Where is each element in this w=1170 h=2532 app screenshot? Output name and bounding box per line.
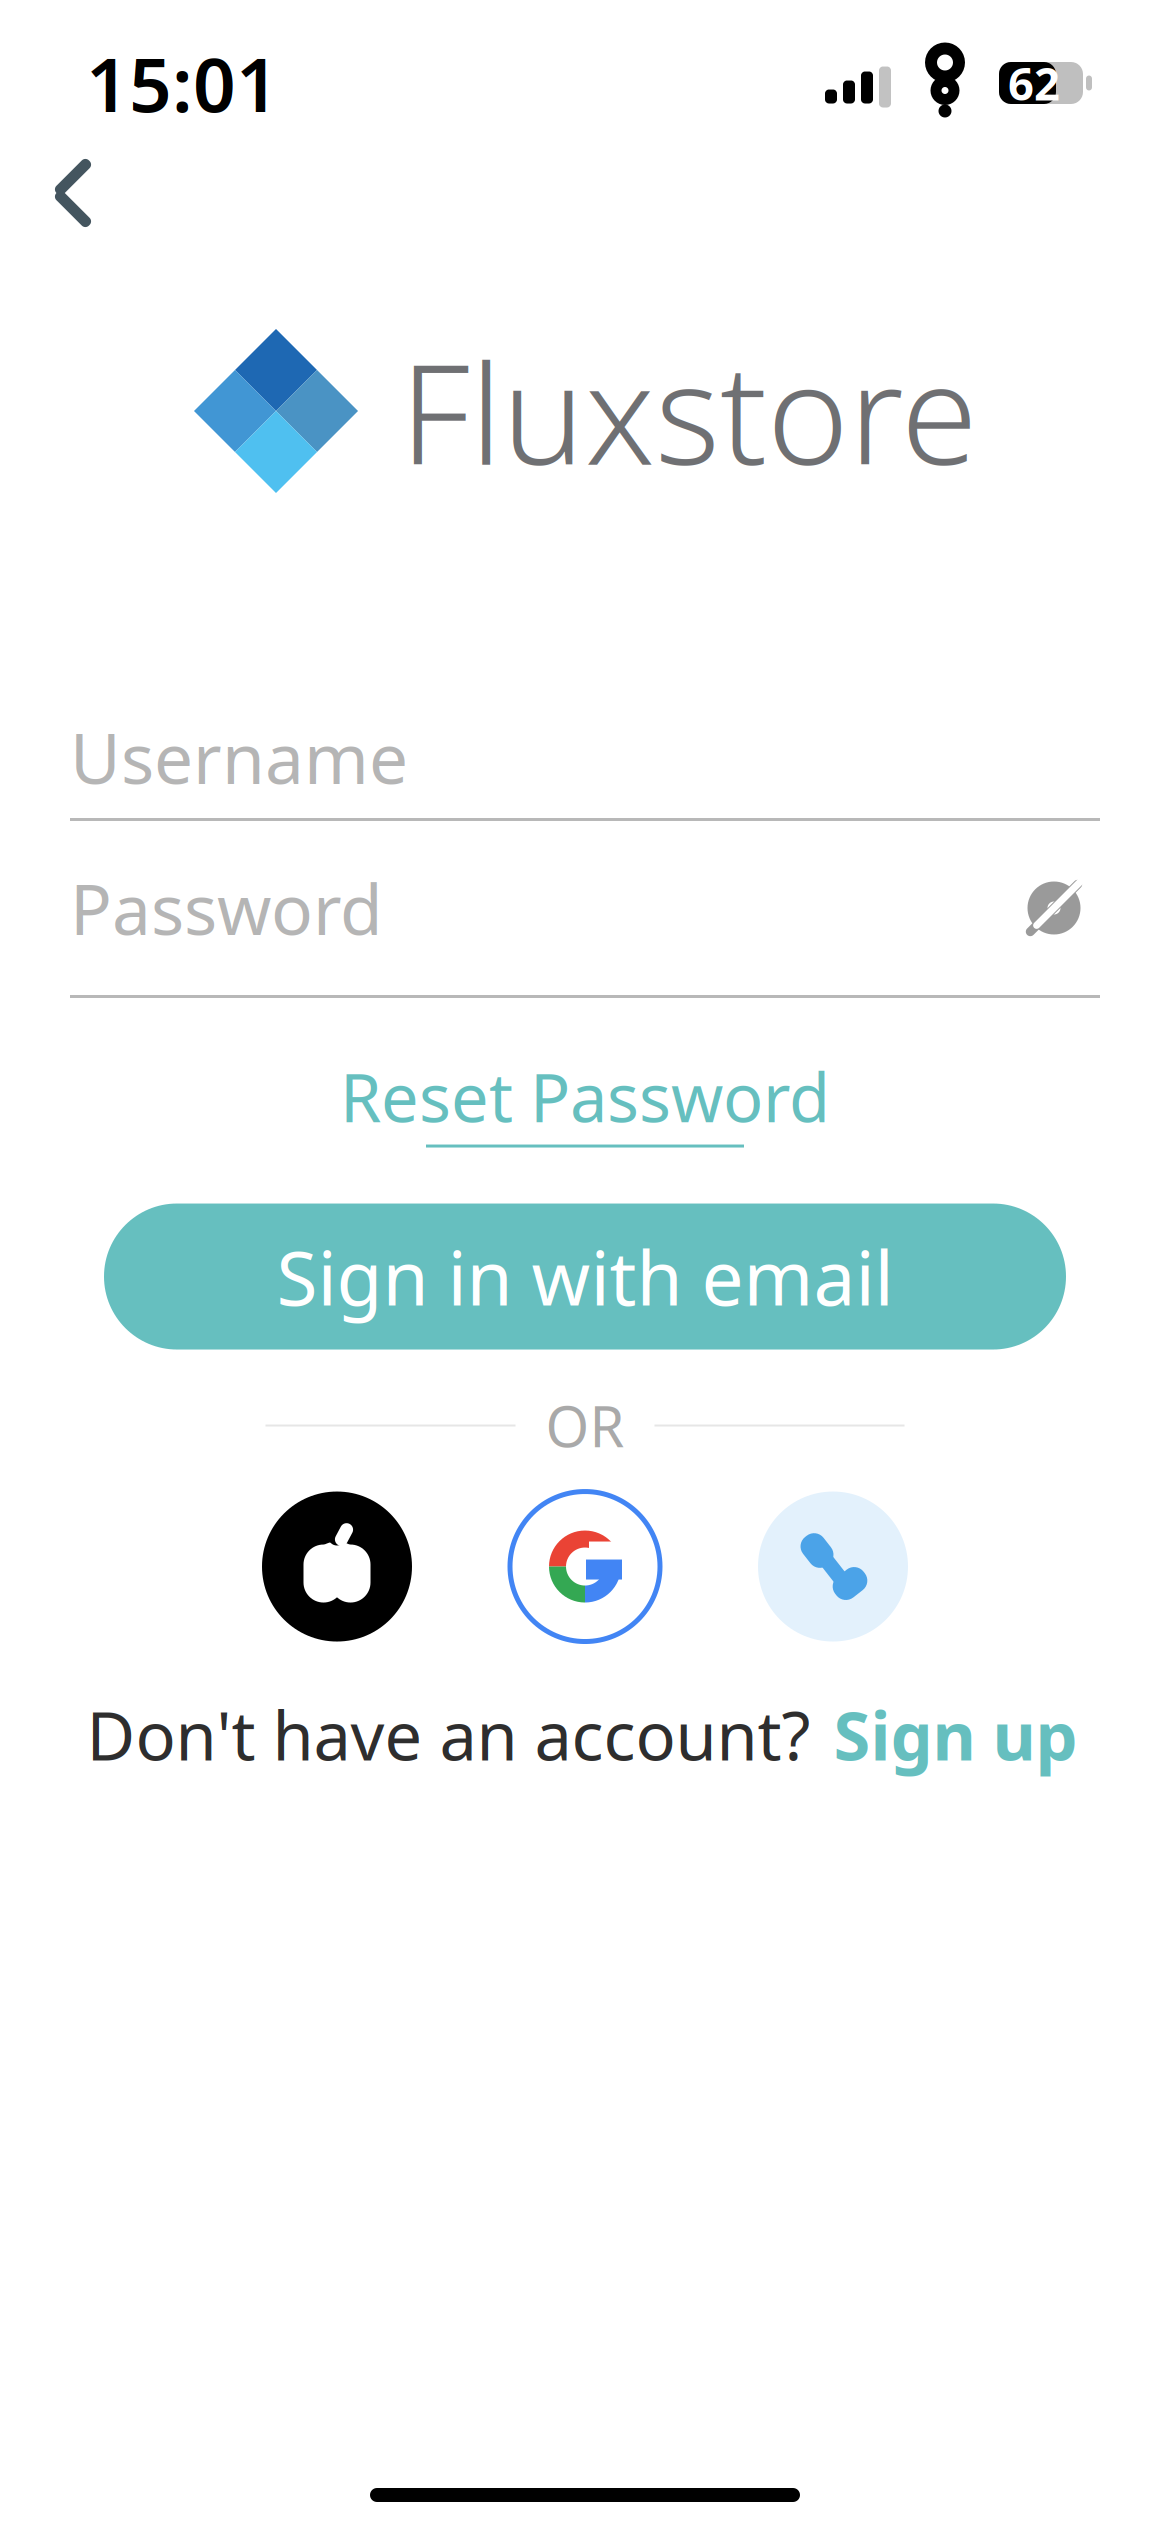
staticText: OR [545, 1388, 624, 1463]
staticText: Sign in with email [276, 1227, 893, 1326]
button[interactable]: Sign in with email [0, 1203, 1170, 1349]
staticText: Sign up [833, 1690, 1077, 1779]
staticText: 15:01 [86, 33, 279, 133]
button[interactable]: Reset Password [324, 1042, 846, 1157]
staticText: Username [70, 711, 408, 803]
staticText: Password [70, 862, 383, 954]
staticText: 62 [1008, 53, 1060, 113]
staticText: Fluxstore [400, 319, 978, 503]
staticText: Reset Password [340, 1052, 830, 1140]
button[interactable]: Sign in with Google [510, 1491, 660, 1641]
button[interactable]: Back [18, 138, 128, 248]
button[interactable]: Sign in with Apple [262, 1491, 412, 1641]
button[interactable]: Show password [1008, 862, 1100, 954]
button[interactable]: Sign in with phone number [758, 1491, 908, 1641]
button[interactable]: Sign up [827, 1682, 1083, 1787]
staticText: Don't have an account? [86, 1690, 827, 1779]
